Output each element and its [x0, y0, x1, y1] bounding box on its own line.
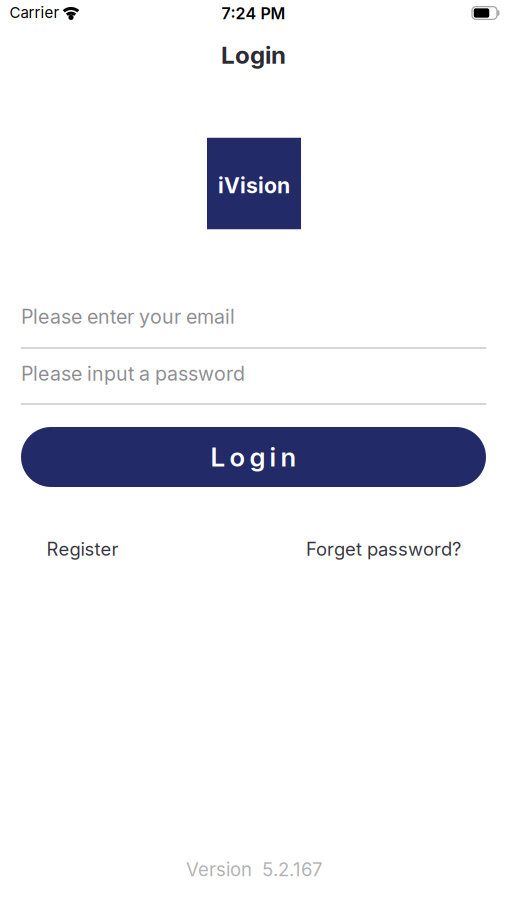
button[interactable]: Forget password?: [306, 538, 461, 560]
staticText: Version 5.2.167: [186, 858, 322, 881]
staticText: Login: [221, 40, 286, 70]
button[interactable]: Register: [46, 538, 118, 560]
staticText: Register: [46, 538, 118, 560]
staticText: Carrier: [9, 3, 59, 22]
staticText: Forget password?: [306, 538, 461, 560]
staticText: iVision: [218, 173, 290, 198]
staticText: 7:24 PM: [221, 4, 285, 23]
button[interactable]: L o g i n: [21, 427, 486, 487]
staticText: Please input a password: [21, 362, 245, 385]
staticText: L o g i n: [210, 441, 296, 473]
staticText: Please enter your email: [21, 305, 235, 328]
